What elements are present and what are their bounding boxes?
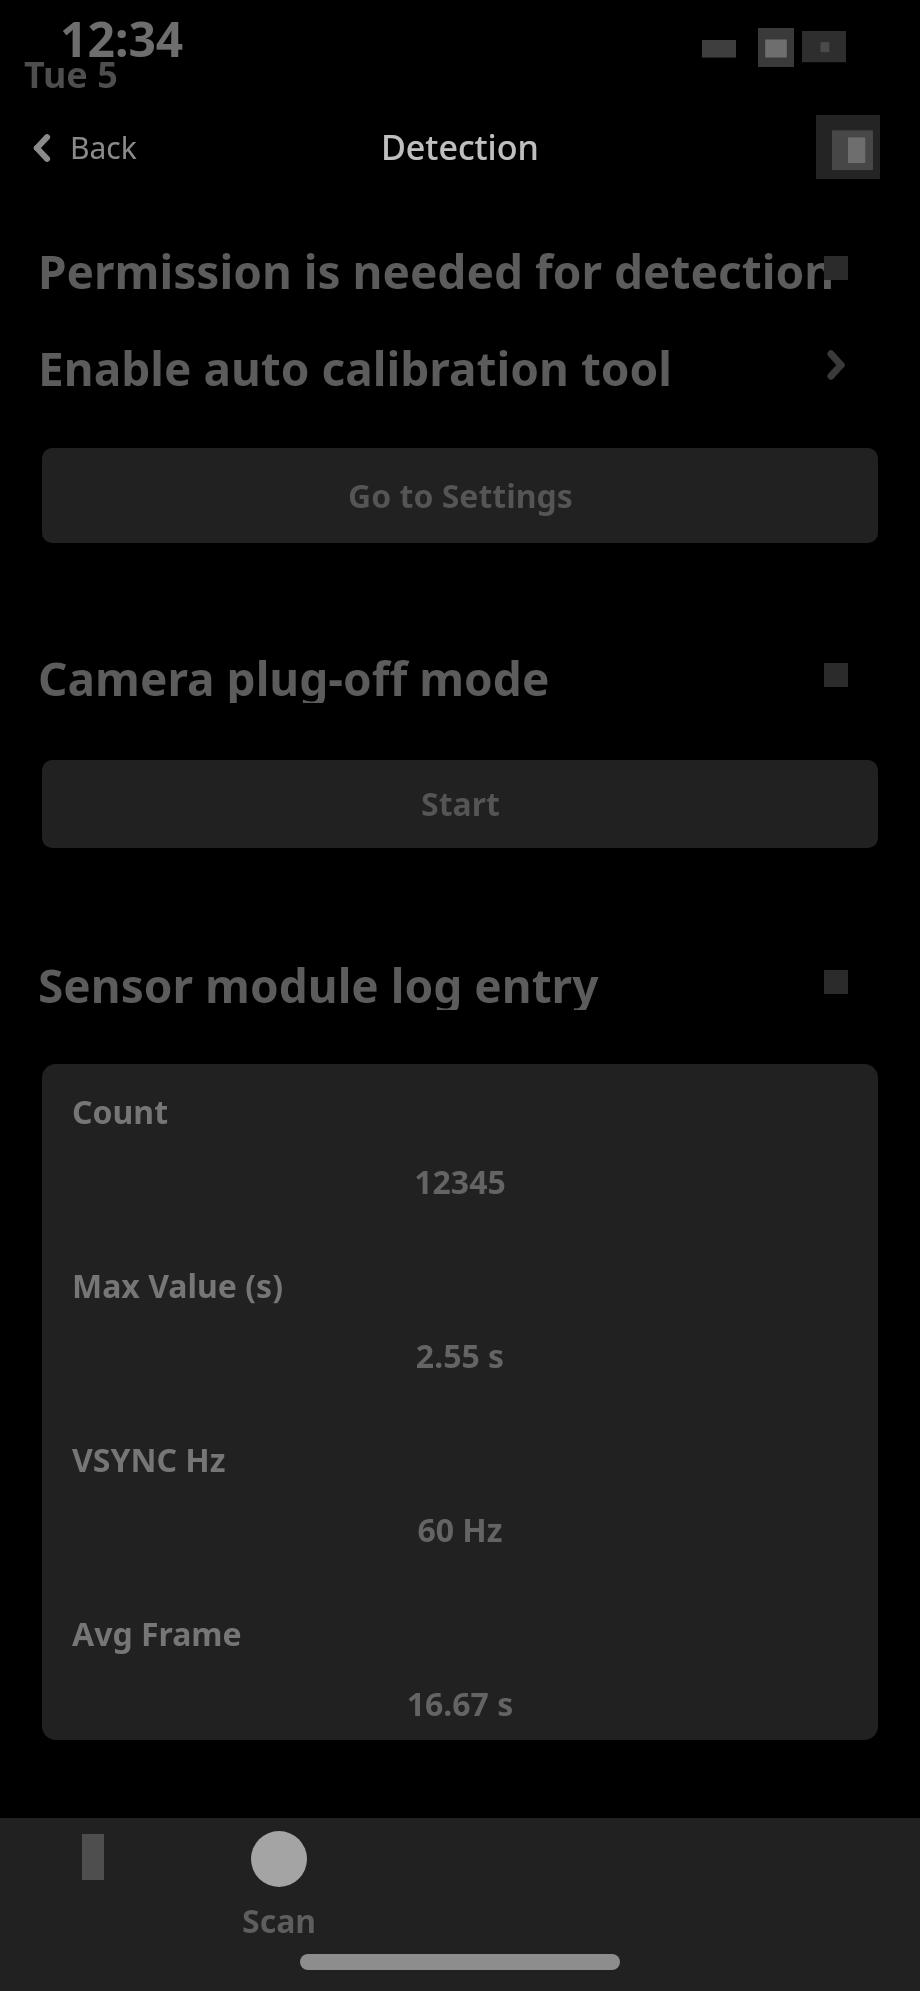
button[interactable]: Delete (816, 115, 880, 179)
button[interactable]: Camera plug-off mode (0, 647, 920, 703)
staticText: Back (70, 127, 137, 168)
staticText: Scan (242, 1899, 317, 1943)
staticText: 12:34 (60, 6, 184, 71)
staticText: Count (72, 1090, 169, 1134)
button[interactable]: Scan (186, 1818, 372, 1946)
staticText: Permission is needed for detection (38, 240, 835, 296)
button[interactable]: Enable auto calibration tool (0, 337, 920, 393)
staticText: Camera plug-off mode (38, 647, 550, 703)
staticText: Tue 5 (24, 50, 118, 99)
staticText: 16.67 s (42, 1682, 878, 1726)
button[interactable]: Go to Settings (42, 448, 878, 543)
staticText: Go to Settings (348, 474, 573, 518)
staticText: 60 Hz (42, 1508, 878, 1552)
staticText: Detection (381, 124, 539, 170)
button[interactable]: Sensor module log entry (0, 954, 920, 1010)
button[interactable]: Permission is needed for detection (0, 240, 920, 296)
staticText: 2.55 s (42, 1334, 878, 1378)
button[interactable]: Start (42, 760, 878, 848)
staticText: Enable auto calibration tool (38, 337, 673, 393)
button[interactable]: Back (0, 119, 153, 176)
staticText: 12345 (42, 1160, 878, 1204)
staticText: Start (421, 782, 500, 826)
staticText: VSYNC Hz (72, 1438, 226, 1482)
staticText: Sensor module log entry (38, 954, 599, 1010)
staticText: Avg Frame (72, 1612, 242, 1656)
staticText: Max Value (s) (72, 1264, 284, 1308)
button[interactable]: History (0, 1818, 186, 1946)
